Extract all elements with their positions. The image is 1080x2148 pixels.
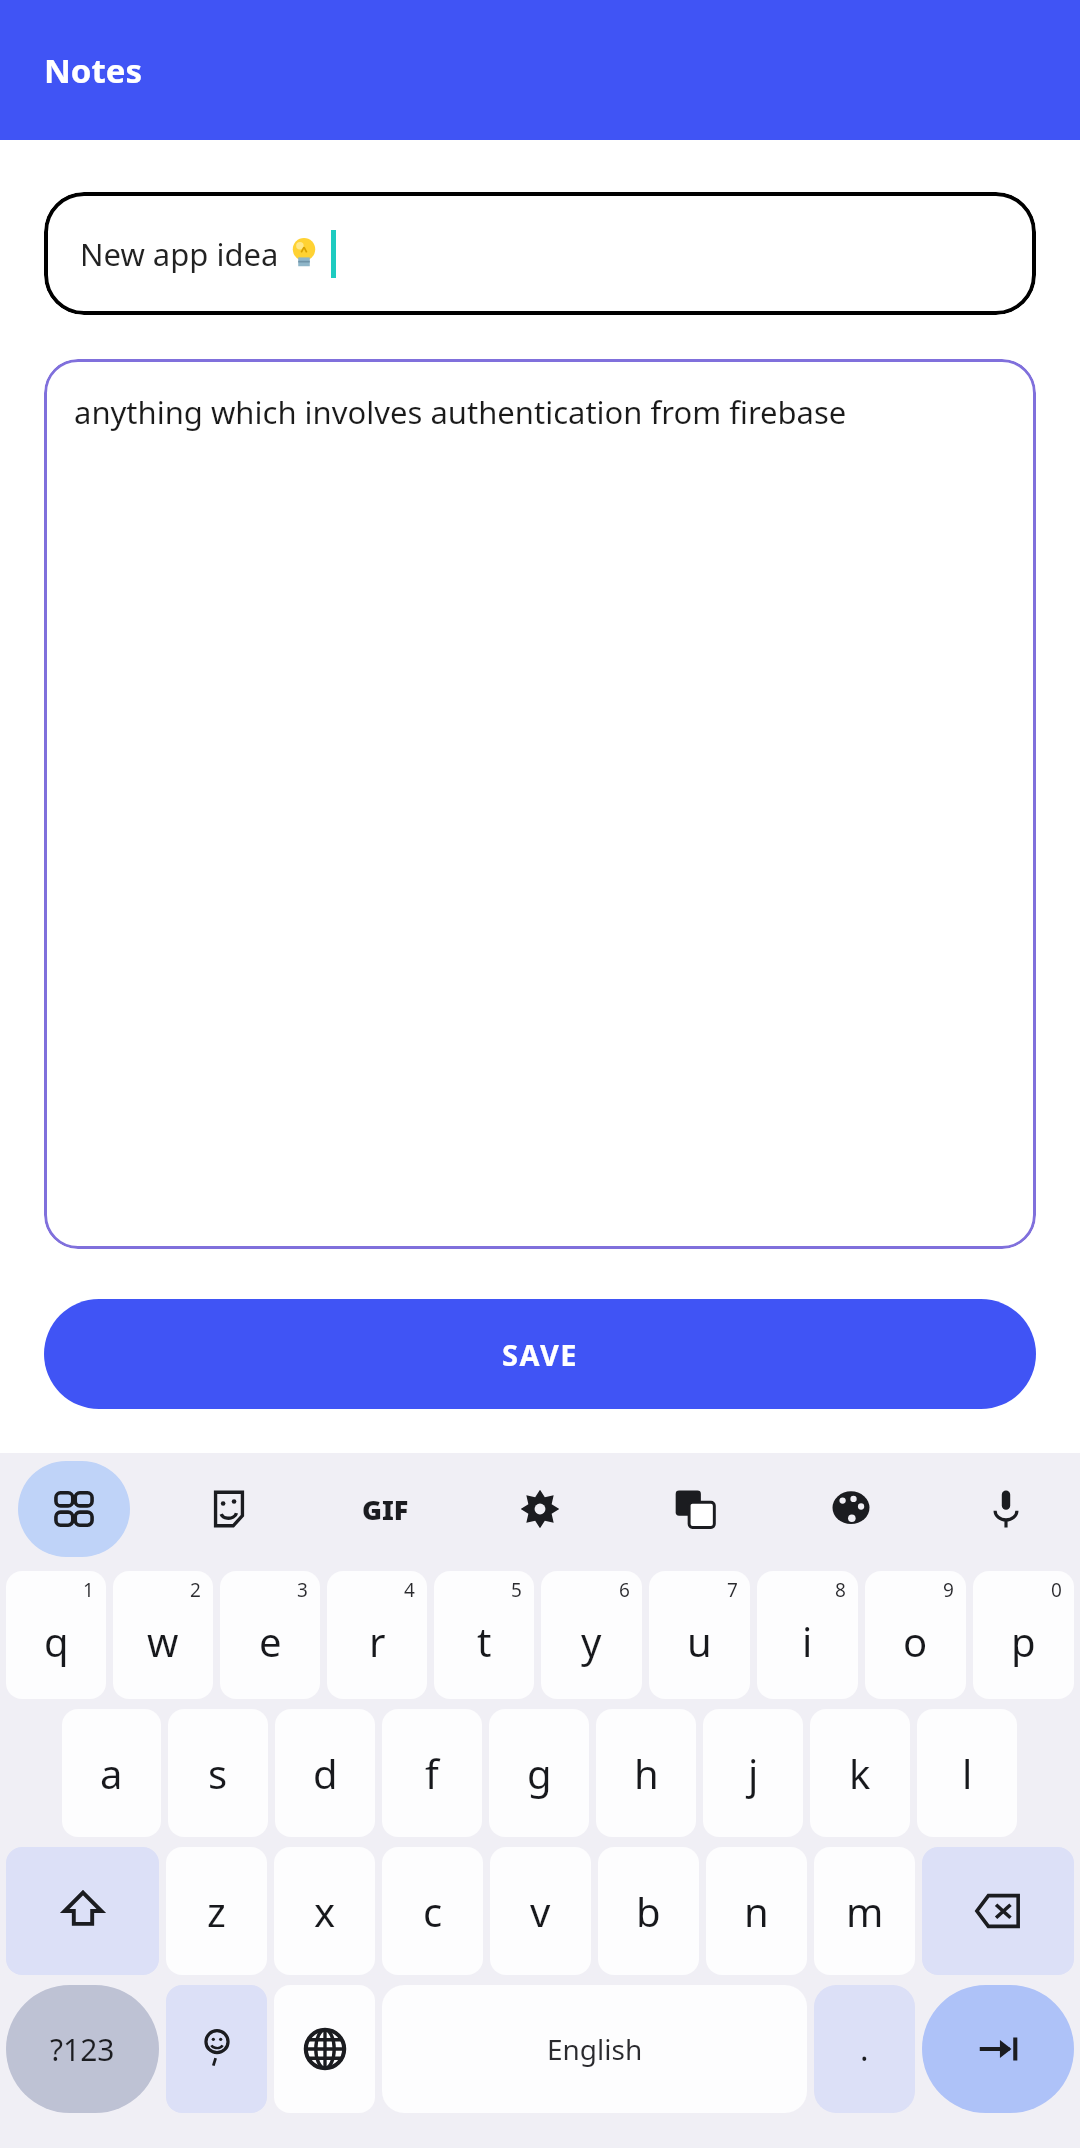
staticText: j (748, 1746, 759, 1800)
button[interactable]: v (490, 1847, 591, 1975)
button[interactable]: Next (922, 1985, 1074, 2113)
staticText: t (477, 1614, 492, 1668)
button[interactable]: h (596, 1709, 696, 1837)
staticText: Notes (44, 48, 143, 93)
staticText: d (313, 1746, 338, 1800)
button[interactable]: 2 (113, 1571, 213, 1699)
staticText: n (744, 1884, 769, 1938)
button[interactable]: 3 (220, 1571, 320, 1699)
staticText: 0 (1051, 1577, 1062, 1603)
staticText: GIF (362, 1491, 409, 1528)
staticText: x (314, 1884, 336, 1938)
staticText: k (849, 1746, 871, 1800)
button[interactable]: SAVE (44, 1299, 1036, 1409)
staticText: anything which involves authentication f… (74, 391, 847, 433)
staticText: 8 (835, 1577, 846, 1603)
button[interactable]: GIF (329, 1461, 441, 1557)
button[interactable]: 1 (6, 1571, 106, 1699)
staticText: a (100, 1746, 123, 1800)
staticText: w (147, 1614, 179, 1668)
staticText: New app idea (80, 233, 287, 275)
staticText: c (423, 1884, 443, 1938)
button[interactable]: 8 (757, 1571, 858, 1699)
button[interactable]: anything which involves authentication f… (44, 359, 1036, 1249)
button[interactable]: 9 (865, 1571, 966, 1699)
button[interactable]: Stickers (173, 1461, 285, 1557)
staticText: . (860, 2027, 869, 2071)
staticText: SAVE (502, 1335, 578, 1374)
staticText: z (207, 1884, 226, 1938)
staticText: m (846, 1884, 884, 1938)
button[interactable]: Translate (639, 1461, 751, 1557)
button[interactable]: Themes (795, 1461, 907, 1557)
staticText: f (425, 1746, 439, 1800)
staticText: ?123 (50, 2029, 115, 2070)
staticText: 9 (943, 1577, 954, 1603)
staticText: b (636, 1884, 661, 1938)
button[interactable]: a (62, 1709, 161, 1837)
button[interactable]: z (166, 1847, 267, 1975)
button[interactable]: j (703, 1709, 803, 1837)
button[interactable]: f (382, 1709, 482, 1837)
staticText: 5 (511, 1577, 522, 1603)
button[interactable]: Keyboard modes (18, 1461, 130, 1557)
button[interactable]: 0 (973, 1571, 1074, 1699)
staticText: 2 (190, 1577, 201, 1603)
staticText: 6 (619, 1577, 630, 1603)
button[interactable]: Emoji (166, 1985, 267, 2113)
button[interactable]: g (489, 1709, 589, 1837)
staticText: o (903, 1614, 928, 1668)
staticText: r (369, 1614, 386, 1668)
button[interactable]: ?123 (6, 1985, 159, 2113)
button[interactable]: n (706, 1847, 807, 1975)
button[interactable]: English (382, 1985, 807, 2113)
button[interactable]: l (917, 1709, 1017, 1837)
button[interactable]: . (814, 1985, 915, 2113)
button[interactable]: d (275, 1709, 375, 1837)
button[interactable]: New app idea (44, 192, 1036, 315)
button[interactable]: 4 (327, 1571, 427, 1699)
button[interactable]: x (274, 1847, 375, 1975)
staticText: i (802, 1614, 813, 1668)
button[interactable]: Settings (484, 1461, 596, 1557)
button[interactable]: c (382, 1847, 483, 1975)
staticText: y (581, 1614, 602, 1668)
button[interactable]: Language (274, 1985, 375, 2113)
button[interactable]: 6 (541, 1571, 642, 1699)
staticText: u (687, 1614, 712, 1668)
button[interactable]: 7 (649, 1571, 750, 1699)
button[interactable]: Voice input (950, 1461, 1062, 1557)
staticText: g (527, 1746, 552, 1800)
staticText: English (547, 2030, 643, 2068)
button[interactable]: s (168, 1709, 268, 1837)
button[interactable]: Backspace (922, 1847, 1074, 1975)
staticText: 1 (83, 1577, 94, 1603)
staticText: s (208, 1746, 228, 1800)
button[interactable]: m (814, 1847, 915, 1975)
staticText: q (44, 1614, 69, 1668)
staticText: 4 (404, 1577, 415, 1603)
staticText: h (634, 1746, 659, 1800)
button[interactable]: Shift (6, 1847, 159, 1975)
button[interactable]: k (810, 1709, 910, 1837)
button[interactable]: 5 (434, 1571, 534, 1699)
button[interactable]: b (598, 1847, 699, 1975)
staticText: p (1011, 1614, 1036, 1668)
staticText: e (259, 1614, 282, 1668)
staticText: v (530, 1884, 551, 1938)
staticText: 3 (297, 1577, 308, 1603)
staticText: 7 (727, 1577, 738, 1603)
staticText: l (962, 1746, 973, 1800)
